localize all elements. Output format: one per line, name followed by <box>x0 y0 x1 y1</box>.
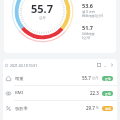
staticText: % <box>96 106 99 110</box>
staticText: 55.7 <box>31 1 53 16</box>
staticText: 53.6 <box>82 2 93 9</box>
staticText: 正常 <box>105 77 111 81</box>
staticText: 29.7 <box>86 105 95 111</box>
button[interactable]: 脂肪率 <box>3 101 117 115</box>
staticText: 2021-02-18 10:31 <box>10 63 38 68</box>
staticText: 51.7 <box>82 24 93 31</box>
staticText: 22.3 <box>90 90 99 96</box>
button[interactable]: BMI <box>3 86 117 100</box>
staticText: 體重 <box>15 76 24 81</box>
button[interactable]: 體重 <box>3 71 117 85</box>
staticText: 公斤 <box>39 16 46 20</box>
staticText: 55.7 <box>82 75 91 81</box>
other: Note <box>97 63 101 67</box>
staticText: 正常 <box>105 92 111 96</box>
staticText: 減 3 天內 <box>82 10 96 14</box>
staticText: 標準體重(公斤) <box>82 14 104 18</box>
staticText: 目標體重 <box>82 32 95 36</box>
staticText: 脂肪率 <box>15 106 28 111</box>
staticText: 偏高 <box>105 107 111 111</box>
staticText: 公斤 <box>92 76 99 80</box>
staticText: BMI <box>15 90 23 96</box>
other: More <box>110 63 114 67</box>
button[interactable] <box>4 0 116 53</box>
staticText: (公斤) <box>82 36 91 40</box>
staticText: -- <box>104 63 107 68</box>
button[interactable]: 2021-02-18 10:31 <box>3 59 117 71</box>
